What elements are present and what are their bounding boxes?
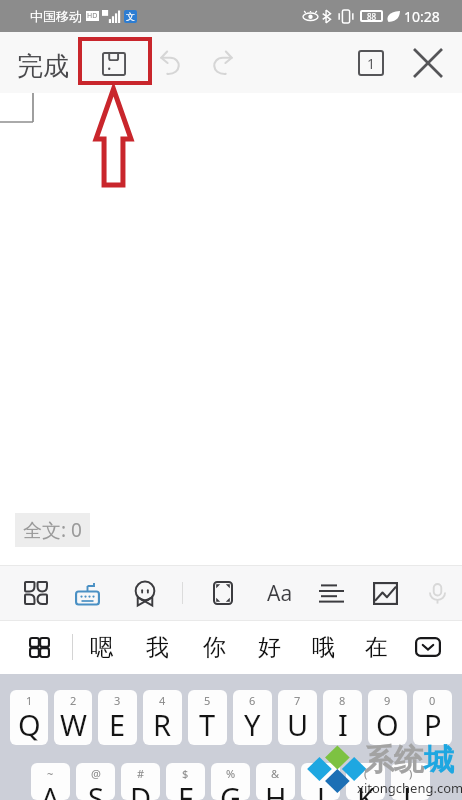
staticText: O [376,705,399,744]
button[interactable]: Aa [260,573,300,613]
staticText: 你 [203,633,226,662]
button[interactable]: # [121,763,160,800]
staticText: 8 [339,693,346,708]
staticText: 好 [258,633,281,662]
staticText: R [153,705,172,744]
button[interactable]: More [19,627,59,667]
staticText: Q [18,705,41,744]
button[interactable]: 5 [188,690,227,745]
staticText: T [199,705,216,744]
staticText: ( [364,766,368,781]
staticText: J [317,778,325,800]
button[interactable]: Emoji [125,573,165,613]
button[interactable]: 我 [138,628,176,666]
button[interactable]: Save [78,37,152,85]
button[interactable]: 完成 [17,50,69,83]
button[interactable]: Redo [199,40,245,86]
staticText: 全文: 0 [23,517,82,543]
button[interactable]: Align [311,573,351,613]
staticText: 在 [365,633,388,662]
other: Eye [303,11,318,22]
other: Bluetooth [322,10,331,23]
staticText: P [424,705,442,744]
staticText: S [88,778,104,800]
button[interactable]: Apps [16,573,56,613]
button[interactable]: $ [166,763,205,800]
staticText: @ [91,766,101,781]
button[interactable]: 1 [10,690,48,745]
staticText: 系统 [364,741,424,779]
staticText: U [287,705,309,744]
button[interactable]: 6 [233,690,272,745]
button[interactable]: 8 [323,690,362,745]
button[interactable]: @ [76,763,115,800]
staticText: 88 [367,11,377,22]
staticText: I [338,705,348,744]
button[interactable]: ( [346,763,385,800]
staticText: 2 [70,693,77,708]
button[interactable]: 3 [98,690,137,745]
other: Vibrate [337,10,355,23]
staticText: 哦 [312,633,335,662]
button[interactable]: 4 [143,690,182,745]
staticText: ) [409,766,413,781]
staticText: 6 [249,693,256,708]
staticText: L [403,778,419,800]
staticText: 9 [384,693,391,708]
staticText: # [137,766,145,781]
button[interactable]: 在 [357,628,395,666]
staticText: & [271,766,280,781]
staticText: 1 [367,54,376,73]
staticText: 嗯 [90,633,113,662]
staticText: Y [244,705,261,744]
button[interactable]: Image [365,573,405,613]
button[interactable]: 你 [195,628,233,666]
button[interactable]: 2 [54,690,92,745]
staticText: 文 [126,11,135,22]
button[interactable]: Undo [147,40,193,86]
staticText: W [60,705,87,744]
staticText: 0 [429,693,436,708]
button[interactable]: Voice [417,573,457,613]
staticText: * [317,766,324,781]
staticText: ~ [47,766,54,781]
staticText: 5 [204,693,211,708]
staticText: D [130,778,152,800]
button[interactable]: Close [405,40,451,86]
staticText: 完成 [17,50,69,83]
button[interactable]: Select [203,573,243,613]
button[interactable]: 嗯 [82,628,120,666]
button[interactable]: * [301,763,340,800]
staticText: 7 [294,693,301,708]
staticText: G [220,778,242,800]
staticText: $ [182,766,189,781]
button[interactable]: & [256,763,295,800]
staticText: F [178,778,194,800]
staticText: K [357,778,375,800]
button[interactable]: 好 [250,628,288,666]
button[interactable]: ~ [31,763,70,800]
staticText: 1 [26,693,33,708]
button[interactable]: 哦 [304,628,342,666]
button[interactable]: Expand [409,628,447,666]
staticText: % [226,766,236,781]
button[interactable]: 7 [278,690,317,745]
staticText: Aa [267,579,293,608]
button[interactable]: 9 [368,690,407,745]
staticText: H [265,778,287,800]
staticText: 4 [159,693,166,708]
staticText: E [109,705,126,744]
button[interactable]: ) [391,763,430,800]
button[interactable]: Keyboard [67,573,107,613]
staticText: 城 [424,741,454,779]
staticText: 中国移动 [30,8,82,24]
other: Power saving [386,11,400,22]
button[interactable]: Pages [349,41,393,85]
staticText: 10:28 [404,7,440,26]
staticText: HD [87,11,98,21]
staticText: A [41,778,60,800]
button[interactable]: 0 [413,690,452,745]
staticText: xitongcheng.com [357,779,462,797]
staticText: 我 [146,633,169,662]
button[interactable]: % [211,763,250,800]
